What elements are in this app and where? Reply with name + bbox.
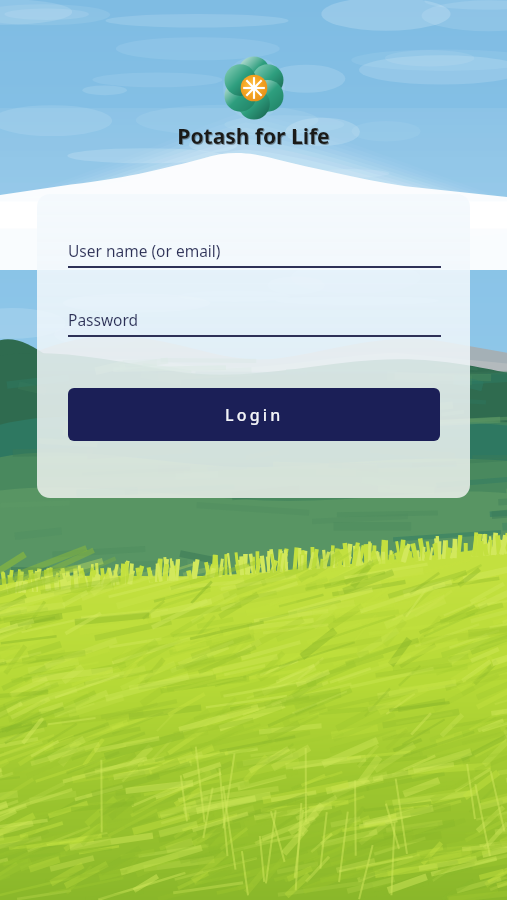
button[interactable]: Login bbox=[68, 388, 440, 441]
staticText: User name (or email) bbox=[68, 240, 221, 261]
staticText: Password bbox=[68, 309, 139, 330]
button[interactable]: Password bbox=[68, 307, 441, 353]
staticText: Potash for Life bbox=[178, 123, 331, 152]
staticText: Potash for Life bbox=[177, 122, 330, 151]
button[interactable]: User name (or email) bbox=[68, 238, 441, 284]
staticText: Login bbox=[225, 404, 284, 426]
